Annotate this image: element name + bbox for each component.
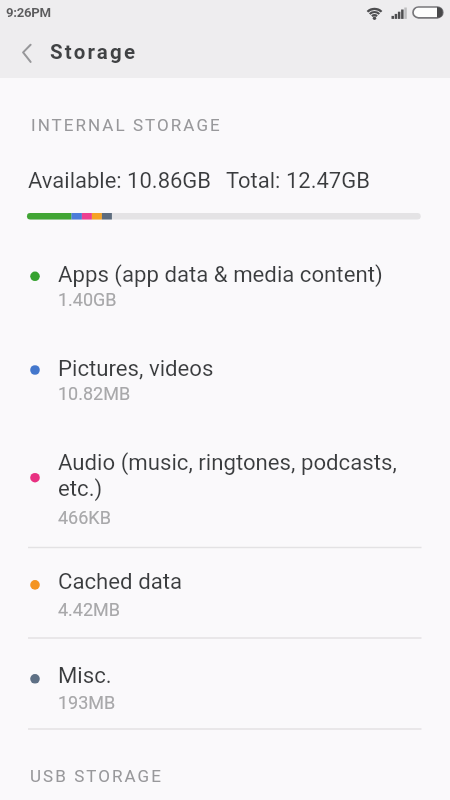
staticText: Available: 10.86GB (28, 168, 212, 194)
staticText: Apps (app data & media content) (58, 261, 383, 287)
staticText: Cached data (58, 568, 183, 594)
button[interactable] (8, 36, 42, 70)
staticText: Storage (50, 40, 138, 64)
staticText: 4.42MB (58, 599, 121, 620)
staticText: 193MB (58, 692, 116, 713)
staticText: 9:26PM (6, 5, 51, 20)
button[interactable] (0, 250, 450, 344)
staticText: Total: 12.47GB (226, 168, 370, 194)
staticText: 10.82MB (58, 383, 131, 404)
staticText: Misc. (58, 662, 112, 688)
staticText: 1.40GB (58, 289, 117, 310)
staticText: Pictures, videos (58, 355, 214, 381)
button[interactable] (0, 559, 450, 650)
staticText: INTERNAL STORAGE (31, 115, 222, 135)
staticText: 466KB (58, 507, 111, 528)
button[interactable] (0, 344, 450, 438)
staticText: USB STORAGE (30, 766, 163, 786)
staticText: Audio (music, ringtones, podcasts, etc.) (58, 449, 397, 501)
button[interactable] (0, 650, 450, 741)
button[interactable] (0, 438, 450, 559)
